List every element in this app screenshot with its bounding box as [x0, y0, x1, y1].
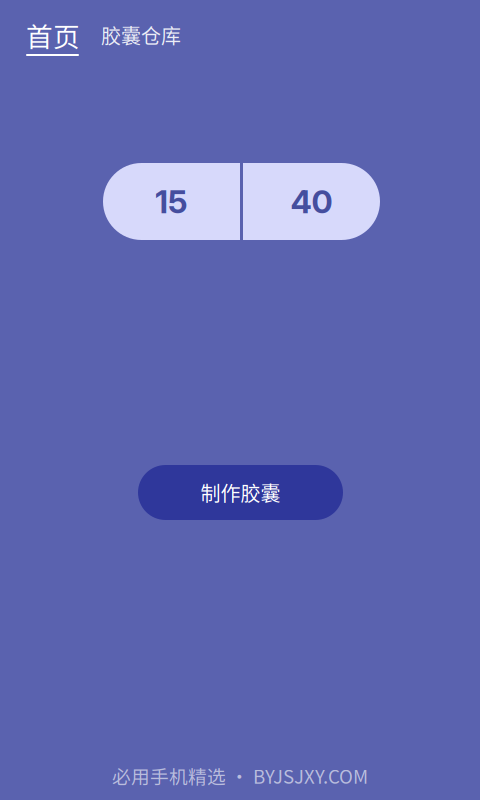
staticText: 15 — [155, 182, 188, 221]
button[interactable]: 首页 — [26, 21, 79, 56]
staticText: 胶囊仓库 — [101, 20, 181, 49]
button[interactable]: 40 — [243, 163, 380, 240]
staticText: 40 — [290, 182, 332, 221]
button[interactable]: 15 — [103, 163, 240, 240]
staticText: 制作胶囊 — [200, 478, 280, 507]
button[interactable]: 胶囊仓库 — [101, 21, 181, 49]
staticText: 首页 — [26, 16, 80, 54]
button[interactable]: 制作胶囊 — [138, 465, 343, 520]
staticText: 必用手机精选 • BYJSJXY.COM — [112, 762, 368, 789]
